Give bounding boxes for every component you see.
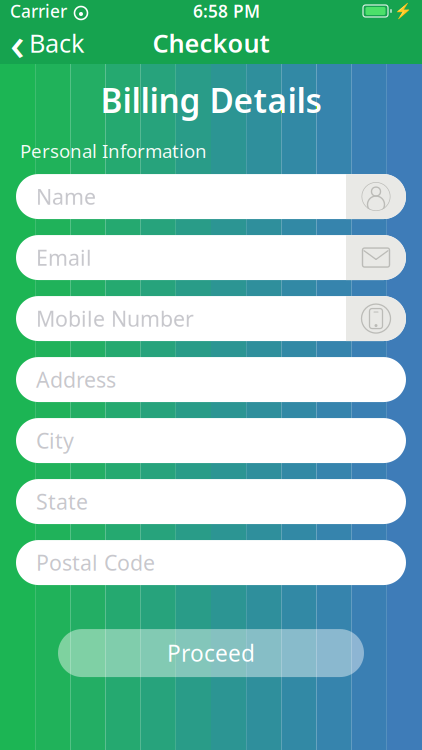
button[interactable]: Name (16, 174, 406, 219)
button[interactable]: City (16, 418, 406, 463)
button[interactable]: State (16, 479, 406, 524)
staticText: Postal Code (36, 548, 155, 577)
staticText: ‹ (10, 13, 25, 73)
staticText: ⚡ (394, 3, 412, 19)
staticText: Mobile Number (36, 304, 194, 333)
staticText: 6:58 PM (193, 0, 260, 22)
button[interactable]: Address (16, 357, 406, 402)
staticText: Proceed (167, 638, 255, 668)
staticText: Carrier (10, 0, 67, 22)
staticText: Email (36, 243, 92, 272)
button[interactable]: Postal Code (16, 540, 406, 585)
staticText: Personal Information (20, 138, 207, 163)
button[interactable]: Email (16, 235, 406, 280)
staticText: Address (36, 365, 116, 394)
staticText: Back (29, 26, 85, 60)
staticText: City (36, 426, 74, 455)
staticText: State (36, 487, 88, 516)
button[interactable]: Mobile Number (16, 296, 406, 341)
staticText: Billing Details (100, 78, 321, 122)
button[interactable]: ‹ (0, 22, 85, 64)
staticText: Checkout (152, 26, 269, 60)
staticText: Name (36, 182, 96, 211)
button[interactable]: Proceed (58, 629, 364, 677)
